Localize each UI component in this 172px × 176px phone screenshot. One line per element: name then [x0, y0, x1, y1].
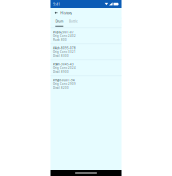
staticText: Flush 800 — [53, 38, 67, 42]
button[interactable]: Drum — [55, 19, 64, 24]
staticText: #Ash-8095-078 — [53, 46, 76, 50]
button[interactable]: #Opa-2001-07 — [50, 28, 121, 44]
staticText: Orig Conc 2402 — [53, 34, 76, 38]
button[interactable]: Back — [54, 10, 58, 15]
button[interactable]: #Ash-8095-078 — [50, 44, 121, 60]
button[interactable]: Bottle — [69, 19, 78, 24]
staticText: Distil 8900 — [53, 70, 69, 74]
staticText: #Hypt-0u01-94 — [53, 78, 75, 82]
staticText: #Opa-2001-07 — [53, 30, 74, 34]
staticText: Distil 8300 — [53, 54, 69, 58]
staticText: History — [60, 10, 72, 15]
staticText: 9:41 — [53, 1, 60, 7]
staticText: Distil 8200 — [53, 86, 69, 90]
staticText: Orig Conc 3321 — [53, 50, 76, 54]
button[interactable]: #Sain-3045-43 — [50, 60, 121, 76]
staticText: Bottle — [69, 19, 78, 23]
staticText: Drum — [55, 19, 63, 23]
staticText: Orig Conc 2024 — [53, 66, 76, 70]
button[interactable]: #Hypt-0u01-94 — [50, 76, 121, 92]
staticText: Orig Conc 2909 — [53, 82, 76, 86]
staticText: #Sain-3045-43 — [53, 62, 74, 66]
